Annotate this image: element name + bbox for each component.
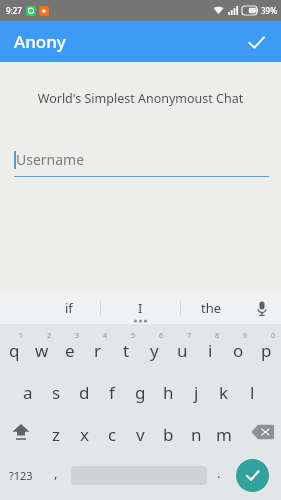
- staticText: o: [233, 339, 244, 362]
- button[interactable]: j: [182, 370, 210, 411]
- staticText: 8: [215, 331, 220, 341]
- staticText: g: [135, 381, 146, 404]
- staticText: ?123: [9, 468, 33, 483]
- staticText: c: [108, 423, 117, 446]
- staticText: v: [136, 423, 145, 446]
- staticText: m: [216, 423, 232, 446]
- staticText: the: [201, 299, 222, 317]
- staticText: 5: [131, 331, 136, 341]
- button[interactable]: Voice input: [249, 295, 275, 321]
- staticText: 9: [243, 331, 248, 341]
- button[interactable]: v: [126, 412, 154, 453]
- button[interactable]: s: [42, 370, 70, 411]
- staticText: World's Simplest Anonymoust Chat: [0, 90, 281, 107]
- staticText: x: [80, 423, 89, 446]
- button[interactable]: n: [182, 412, 210, 453]
- button[interactable]: g: [126, 370, 154, 411]
- button[interactable]: z: [42, 412, 70, 453]
- button[interactable]: p: [252, 328, 280, 369]
- button[interactable]: the: [182, 291, 240, 324]
- staticText: 0: [271, 331, 276, 341]
- button[interactable]: if: [40, 291, 98, 324]
- button[interactable]: q: [0, 328, 28, 369]
- button[interactable]: Space: [70, 453, 208, 498]
- staticText: f: [109, 381, 115, 404]
- button[interactable]: c: [98, 412, 126, 453]
- button[interactable]: Confirm: [239, 25, 273, 59]
- button[interactable]: Shift: [0, 411, 42, 453]
- staticText: t: [123, 339, 130, 362]
- button[interactable]: d: [70, 370, 98, 411]
- staticText: p: [261, 339, 272, 362]
- staticText: s: [52, 381, 61, 404]
- staticText: if: [65, 299, 73, 317]
- button[interactable]: h: [154, 370, 182, 411]
- staticText: 1: [19, 331, 24, 341]
- button[interactable]: i: [196, 328, 224, 369]
- staticText: 9:27: [6, 5, 22, 16]
- staticText: 39%: [261, 5, 277, 16]
- button[interactable]: f: [98, 370, 126, 411]
- staticText: 4: [103, 331, 108, 341]
- button[interactable]: u: [168, 328, 196, 369]
- staticText: e: [65, 339, 75, 362]
- staticText: 2: [47, 331, 52, 341]
- button[interactable]: m: [210, 412, 238, 453]
- staticText: 7: [187, 331, 192, 341]
- button[interactable]: Enter: [230, 453, 275, 498]
- staticText: a: [23, 381, 33, 404]
- staticText: d: [79, 381, 90, 404]
- button[interactable]: l: [238, 370, 266, 411]
- staticText: q: [9, 339, 20, 362]
- staticText: 3: [75, 331, 80, 341]
- staticText: u: [177, 339, 188, 362]
- button[interactable]: r: [84, 328, 112, 369]
- button[interactable]: k: [210, 370, 238, 411]
- button[interactable]: a: [14, 370, 42, 411]
- staticText: r: [94, 339, 102, 362]
- button[interactable]: I: [102, 291, 178, 324]
- button[interactable]: x: [70, 412, 98, 453]
- button[interactable]: w: [28, 328, 56, 369]
- button[interactable]: e: [56, 328, 84, 369]
- staticText: y: [150, 339, 159, 362]
- staticText: w: [35, 339, 49, 362]
- staticText: .: [217, 464, 221, 482]
- staticText: j: [194, 381, 199, 404]
- button[interactable]: ?123: [0, 453, 42, 498]
- button[interactable]: ,: [42, 453, 70, 498]
- staticText: Username: [16, 150, 85, 169]
- staticText: 6: [159, 331, 164, 341]
- staticText: z: [52, 423, 60, 446]
- staticText: ,: [54, 464, 58, 482]
- button[interactable]: y: [140, 328, 168, 369]
- staticText: i: [208, 339, 213, 362]
- staticText: Anony: [14, 30, 66, 53]
- button[interactable]: Username: [14, 150, 269, 177]
- button[interactable]: o: [224, 328, 252, 369]
- staticText: b: [163, 423, 174, 446]
- button[interactable]: b: [154, 412, 182, 453]
- staticText: n: [191, 423, 202, 446]
- button[interactable]: .: [208, 453, 230, 498]
- staticText: I: [138, 299, 143, 317]
- staticText: l: [250, 381, 255, 404]
- button[interactable]: t: [112, 328, 140, 369]
- button[interactable]: Backspace: [243, 411, 281, 453]
- staticText: h: [163, 381, 174, 404]
- staticText: k: [219, 381, 229, 404]
